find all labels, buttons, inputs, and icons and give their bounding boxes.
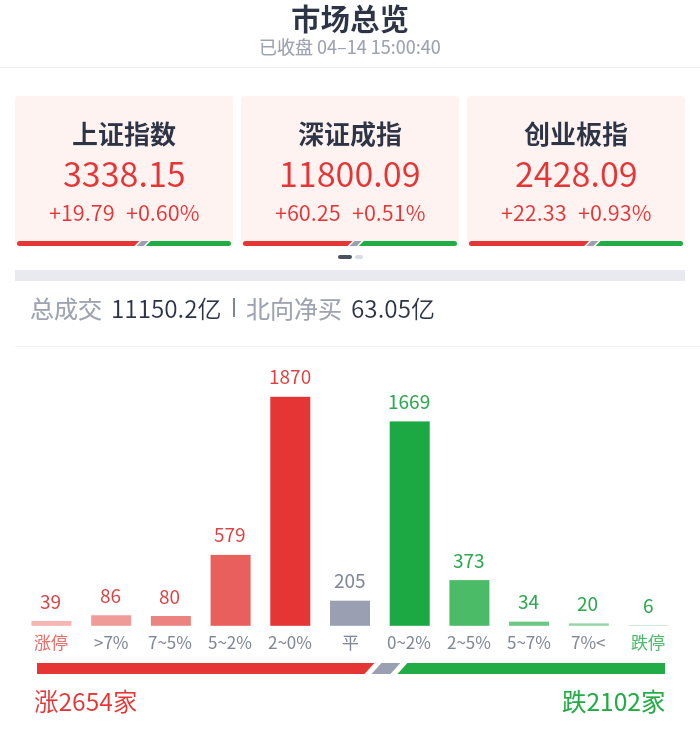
staticText: 总成交	[30, 290, 102, 325]
staticText: 205	[334, 566, 366, 594]
staticText: 北向净买	[246, 290, 342, 325]
staticText: 11150.2亿	[111, 290, 222, 325]
staticText: +22.33	[501, 196, 567, 227]
staticText: 跌2102家	[562, 683, 666, 718]
button[interactable]: 第一页指数	[338, 255, 352, 259]
staticText: +0.60%	[126, 196, 200, 227]
staticText: 市场总览	[291, 0, 410, 36]
staticText: >7%	[94, 629, 129, 654]
staticText: 涨停	[34, 629, 68, 654]
button[interactable]: 上证指数	[15, 96, 233, 246]
staticText: 创业板指	[524, 114, 629, 152]
staticText: +19.79	[49, 196, 115, 227]
staticText: 7~5%	[148, 629, 192, 654]
staticText: 39	[40, 587, 62, 615]
staticText: 0~2%	[387, 629, 431, 654]
button[interactable]: 创业板指	[467, 96, 685, 246]
staticText: 80	[159, 582, 181, 610]
staticText: +60.25	[275, 196, 341, 227]
staticText: 34	[518, 587, 540, 615]
staticText: 已收盘 04–14 15:00:40	[259, 33, 441, 59]
staticText: 平	[342, 629, 359, 654]
staticText: 86	[100, 581, 122, 609]
staticText: 2428.09	[515, 148, 638, 197]
staticText: 3338.15	[63, 148, 186, 197]
button[interactable]: 第二页指数	[355, 255, 363, 259]
staticText: 63.05亿	[351, 290, 435, 325]
staticText: 20	[577, 589, 599, 617]
staticText: 跌停	[631, 629, 665, 654]
staticText: 5~7%	[507, 629, 551, 654]
staticText: 深证成指	[298, 114, 403, 152]
staticText: +0.93%	[578, 196, 652, 227]
button[interactable]: 涨跌家数比例条	[0, 657, 700, 680]
staticText: 5~2%	[208, 629, 252, 654]
staticText: 7%<	[571, 629, 606, 654]
staticText: 11800.09	[279, 148, 421, 197]
staticText: 579	[214, 520, 246, 548]
staticText: +0.51%	[352, 196, 426, 227]
staticText: 1669	[388, 387, 431, 415]
staticText: 2~5%	[447, 629, 491, 654]
staticText: 373	[453, 546, 485, 574]
staticText: 2~0%	[268, 629, 312, 654]
button[interactable]: 总成交	[0, 286, 700, 328]
staticText: 1870	[269, 362, 312, 390]
staticText: 上证指数	[72, 114, 177, 152]
staticText: 6	[643, 591, 654, 619]
staticText: 涨2654家	[34, 683, 138, 718]
button[interactable]: 深证成指	[241, 96, 459, 246]
